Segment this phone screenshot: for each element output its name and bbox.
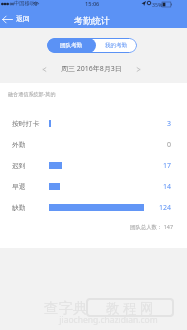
staticText: 35% bbox=[152, 1, 163, 8]
staticText: 124 bbox=[159, 203, 172, 213]
staticText: 迟到 bbox=[12, 161, 26, 170]
staticText: 融合通信系统部-莫的 bbox=[8, 91, 56, 98]
staticText: 我的考勤 bbox=[105, 42, 128, 49]
button[interactable]: 迟到 bbox=[0, 155, 187, 176]
button[interactable]: 返回 bbox=[2, 11, 30, 27]
button[interactable]: 按时打卡 bbox=[0, 113, 187, 134]
staticText: 缺勤 bbox=[12, 203, 26, 212]
button[interactable]: 外勤 bbox=[0, 134, 187, 155]
staticText: 按时打卡 bbox=[12, 119, 40, 128]
staticText: 团队考勤 bbox=[60, 42, 83, 49]
staticText: 考勤统计 bbox=[74, 15, 110, 26]
staticText: 返回 bbox=[16, 14, 30, 23]
staticText: 17 bbox=[163, 161, 172, 171]
button[interactable]: 前一天 bbox=[38, 61, 50, 77]
button[interactable]: 后一天 bbox=[132, 61, 144, 77]
staticText: 15:06 bbox=[85, 0, 100, 8]
staticText: jiaocheng.chazidian.com bbox=[44, 314, 173, 326]
staticText: 教 程 网 bbox=[106, 299, 154, 317]
button[interactable]: 早退 bbox=[0, 176, 187, 197]
staticText: 团队总人数： 147 bbox=[0, 223, 173, 230]
staticText: 查字典 bbox=[44, 299, 88, 317]
button[interactable]: 团队考勤 bbox=[47, 38, 96, 53]
staticText: 中国移动 bbox=[14, 0, 35, 7]
staticText: 早退 bbox=[12, 182, 26, 191]
button[interactable]: 我的考勤 bbox=[96, 38, 137, 53]
staticText: 外勤 bbox=[12, 140, 26, 149]
staticText: 14 bbox=[163, 182, 172, 192]
staticText: 周三 2016年8月3日 bbox=[61, 64, 122, 74]
button[interactable]: 缺勤 bbox=[0, 197, 187, 218]
staticText: 0 bbox=[167, 140, 172, 150]
staticText: 3 bbox=[167, 119, 172, 129]
